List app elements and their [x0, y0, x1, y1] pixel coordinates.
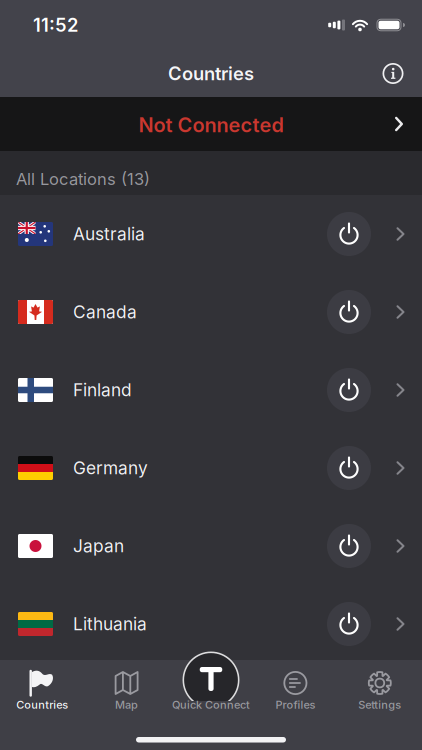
button[interactable]: Not Connected	[0, 97, 422, 151]
staticText: Countries	[16, 698, 68, 711]
staticText: Not Connected	[138, 113, 283, 137]
staticText: Germany	[73, 457, 148, 478]
button[interactable]: Connect	[327, 602, 371, 646]
button[interactable]: Connect	[327, 446, 371, 490]
button[interactable]: Connect	[327, 524, 371, 568]
staticText: All Locations (13)	[16, 169, 150, 189]
staticText: 11:52	[33, 14, 78, 36]
button[interactable]: Settings	[338, 669, 422, 711]
button[interactable]: Quick Connect	[169, 669, 253, 711]
button[interactable]: Finland	[0, 351, 422, 429]
button[interactable]: Map	[84, 669, 169, 711]
button[interactable]: Canada	[0, 273, 422, 351]
button[interactable]: Lithuania	[0, 585, 422, 663]
button[interactable]: Profiles	[253, 669, 338, 711]
staticText: Lithuania	[73, 613, 147, 634]
button[interactable]: Japan	[0, 507, 422, 585]
staticText: Australia	[73, 223, 145, 244]
button[interactable]: Countries	[0, 669, 84, 711]
staticText: Profiles	[275, 698, 315, 711]
staticText: Canada	[73, 301, 137, 322]
staticText: Quick Connect	[172, 698, 250, 711]
staticText: Map	[115, 698, 138, 711]
button[interactable]: Connect	[327, 290, 371, 334]
staticText: Settings	[358, 698, 401, 711]
button[interactable]: Australia	[0, 195, 422, 273]
button[interactable]: Germany	[0, 429, 422, 507]
button[interactable]: Connect	[327, 212, 371, 256]
button[interactable]: Quick Connect	[182, 651, 239, 708]
button[interactable]: Connect	[327, 368, 371, 412]
staticText: Finland	[73, 379, 132, 400]
staticText: Japan	[73, 535, 124, 556]
staticText: Countries	[168, 62, 254, 85]
button[interactable]: Info	[378, 58, 408, 88]
